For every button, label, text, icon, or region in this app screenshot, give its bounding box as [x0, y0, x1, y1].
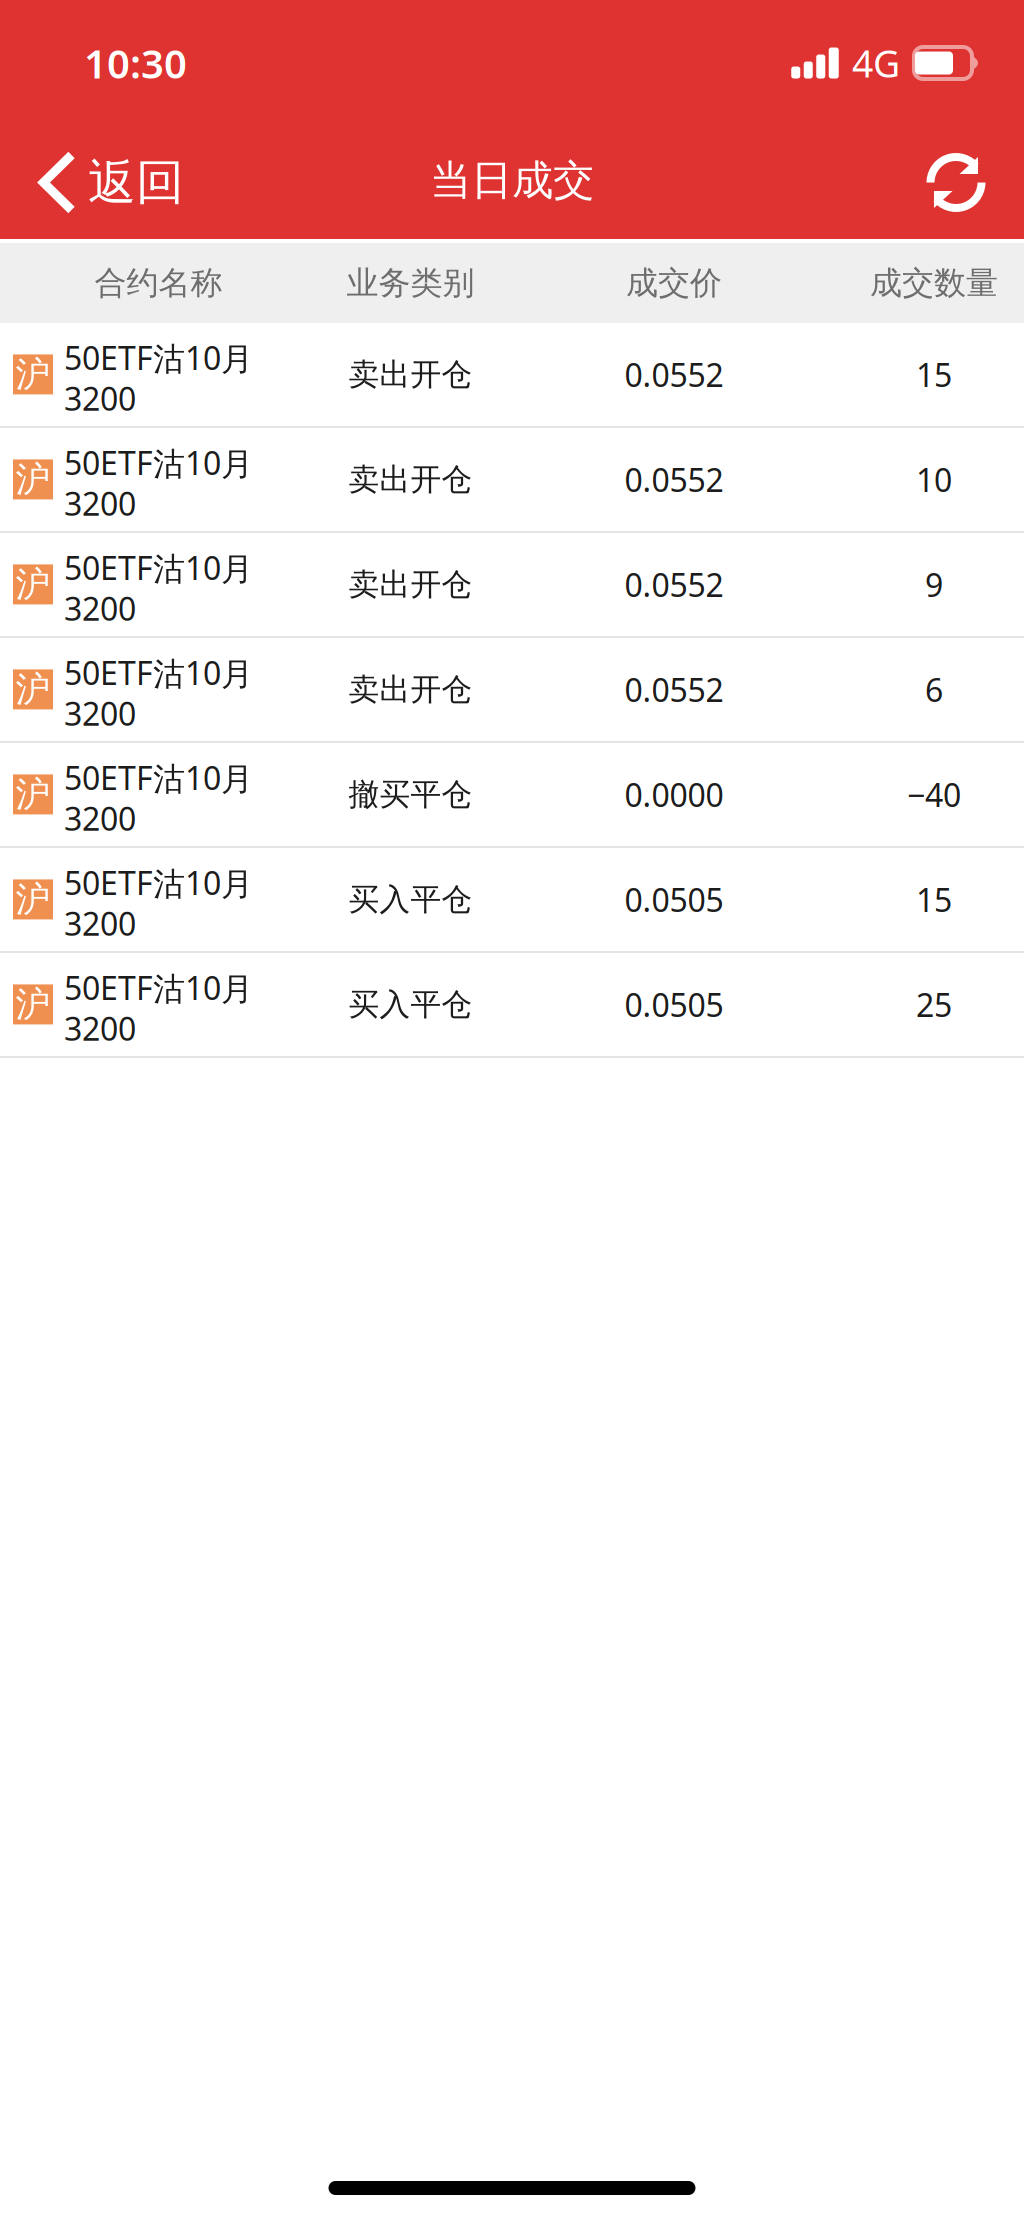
staticText: 6: [925, 668, 943, 711]
staticText: 返回: [88, 153, 184, 212]
staticText: 4G: [852, 38, 900, 88]
button[interactable]: 刷新: [888, 126, 1024, 239]
staticText: 0.0552: [624, 668, 723, 711]
button[interactable]: 沪: [0, 428, 1024, 533]
staticText: 沪: [15, 458, 50, 501]
staticText: 成交数量: [870, 263, 998, 303]
staticText: 成交价: [626, 263, 722, 303]
staticText: 买入平仓: [348, 986, 472, 1023]
staticText: 15: [916, 878, 952, 921]
staticText: 业务类别: [346, 263, 474, 303]
staticText: 沪: [15, 773, 50, 816]
staticText: 撤买平仓: [348, 776, 472, 813]
staticText: 10: [916, 458, 952, 501]
staticText: −40: [907, 773, 961, 816]
staticText: 沪: [15, 668, 50, 711]
staticText: 15: [916, 353, 952, 396]
staticText: 买入平仓: [348, 881, 472, 918]
staticText: 50ETF沽10月 3200: [64, 546, 253, 630]
staticText: 0.0000: [624, 773, 723, 816]
staticText: 0.0505: [624, 983, 723, 1026]
button[interactable]: 返回: [0, 126, 204, 239]
staticText: 10:30: [84, 36, 187, 89]
staticText: 50ETF沽10月 3200: [64, 441, 253, 525]
staticText: 0.0552: [624, 458, 723, 501]
staticText: 50ETF沽10月 3200: [64, 966, 253, 1050]
button[interactable]: 沪: [0, 743, 1024, 848]
button[interactable]: 沪: [0, 323, 1024, 428]
staticText: 50ETF沽10月 3200: [64, 651, 253, 735]
staticText: 0.0552: [624, 563, 723, 606]
staticText: 沪: [15, 878, 50, 921]
staticText: 沪: [15, 563, 50, 606]
button[interactable]: 沪: [0, 638, 1024, 743]
staticText: 9: [925, 563, 943, 606]
staticText: 0.0505: [624, 878, 723, 921]
staticText: 25: [916, 983, 952, 1026]
staticText: 50ETF沽10月 3200: [64, 861, 253, 945]
button[interactable]: 沪: [0, 848, 1024, 953]
staticText: 卖出开仓: [348, 671, 472, 708]
staticText: 卖出开仓: [348, 461, 472, 498]
staticText: 沪: [15, 983, 50, 1026]
staticText: 当日成交: [430, 155, 594, 206]
staticText: 0.0552: [624, 353, 723, 396]
staticText: 50ETF沽10月 3200: [64, 336, 253, 420]
button[interactable]: 沪: [0, 953, 1024, 1058]
staticText: 50ETF沽10月 3200: [64, 756, 253, 840]
staticText: 卖出开仓: [348, 356, 472, 393]
staticText: 合约名称: [94, 263, 222, 303]
button[interactable]: 沪: [0, 533, 1024, 638]
staticText: 卖出开仓: [348, 566, 472, 603]
staticText: 沪: [15, 353, 50, 396]
